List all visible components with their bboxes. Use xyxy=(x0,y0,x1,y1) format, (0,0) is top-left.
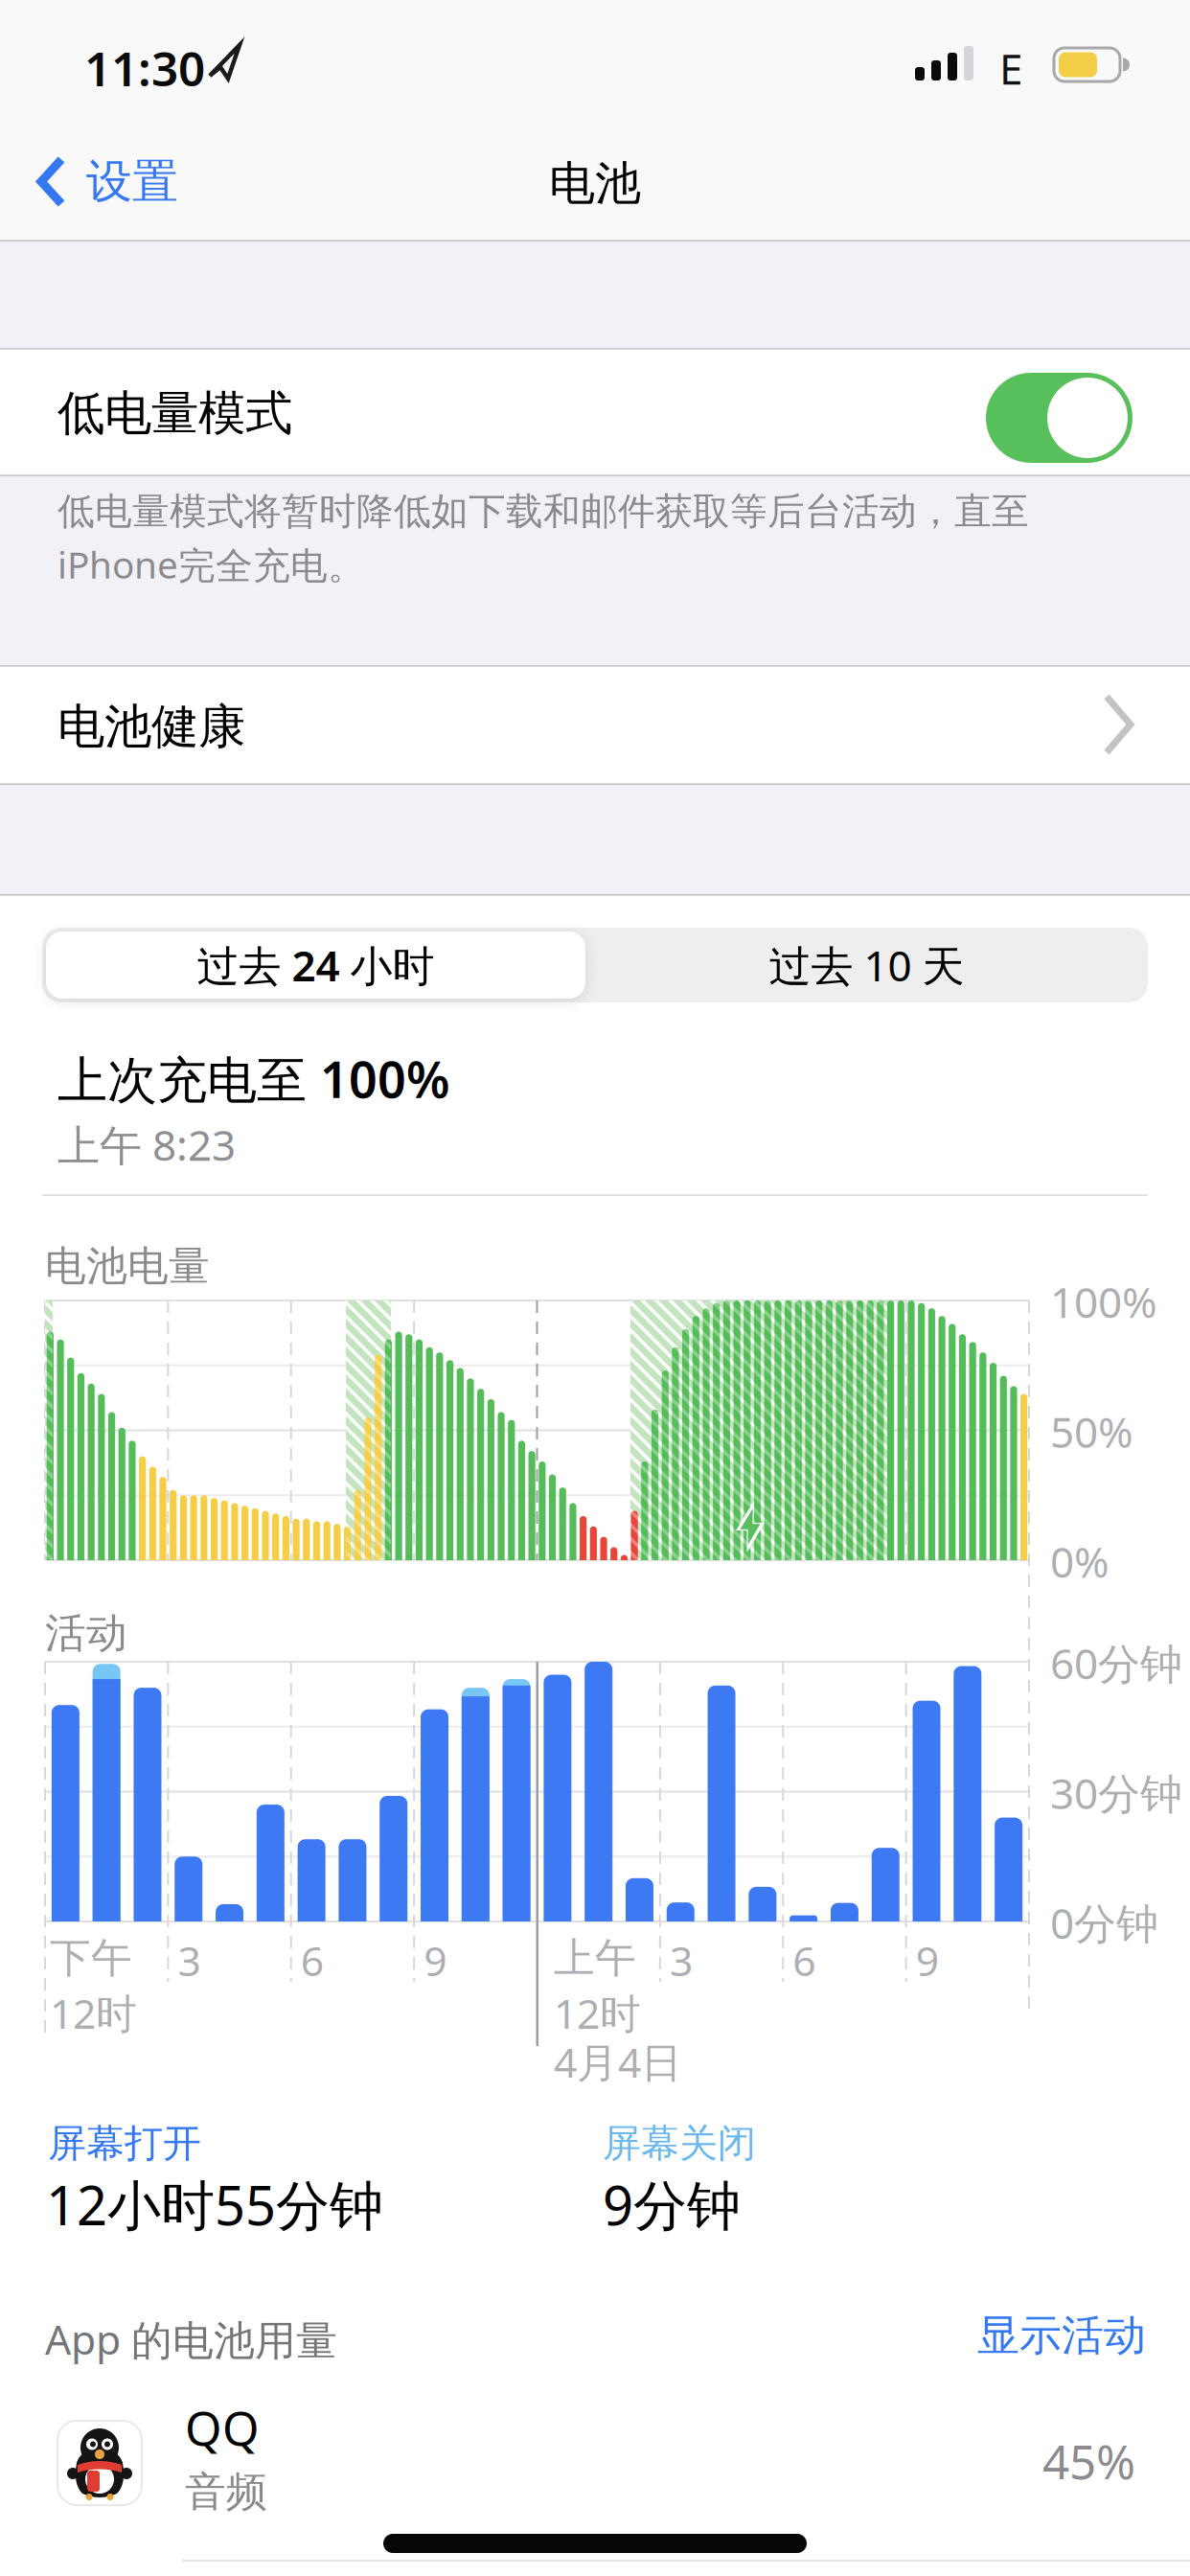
staticText: 6 xyxy=(301,1933,324,1987)
staticText: 上午 xyxy=(554,1933,636,1983)
staticText: 低电量模式 xyxy=(57,384,292,442)
staticText: 9 xyxy=(916,1933,939,1987)
staticText: 12时 xyxy=(554,1986,641,2040)
staticText: 过去 10 天 xyxy=(769,937,964,993)
staticText: QQ xyxy=(185,2396,260,2459)
staticText: 屏幕关闭 xyxy=(603,2120,756,2167)
staticText: 12时 xyxy=(50,1986,137,2040)
button[interactable]: 过去 10 天 xyxy=(585,928,1148,1002)
staticText: 45% xyxy=(1042,2429,1135,2492)
staticText: 30分钟 xyxy=(1050,1765,1182,1821)
button[interactable]: 过去 24 小时 xyxy=(46,931,585,999)
staticText: App 的电池用量 xyxy=(45,2311,337,2366)
staticText: 11:30 xyxy=(84,36,205,99)
staticText: 电池健康 xyxy=(57,698,245,756)
staticText: 3 xyxy=(178,1933,201,1987)
button[interactable]: 低电量模式开关 xyxy=(986,373,1133,463)
staticText: 0% xyxy=(1050,1533,1110,1589)
staticText: 低电量模式将暂时降低如下载和邮件获取等后台活动，直至 xyxy=(57,489,1029,534)
staticText: 显示活动 xyxy=(977,2310,1146,2361)
button[interactable]: 电池健康 xyxy=(0,665,1190,785)
staticText: 4月4日 xyxy=(554,2035,682,2089)
staticText: 12小时55分钟 xyxy=(46,2169,383,2240)
staticText: 0分钟 xyxy=(1050,1895,1158,1951)
staticText: 9 xyxy=(424,1933,447,1987)
staticText: 设置 xyxy=(86,153,178,210)
staticText: 音频 xyxy=(185,2467,267,2517)
button[interactable]: 显示活动 xyxy=(977,2310,1146,2361)
staticText: 6 xyxy=(793,1933,816,1987)
staticText: 下午 xyxy=(50,1933,132,1983)
staticText: E xyxy=(999,40,1022,96)
staticText: 上午 8:23 xyxy=(57,1116,236,1172)
staticText: 电池电量 xyxy=(45,1241,210,1291)
staticText: 过去 24 小时 xyxy=(197,937,435,993)
button[interactable]: 返回设置 xyxy=(0,153,178,210)
staticText: 60分钟 xyxy=(1050,1635,1182,1691)
staticText: iPhone完全充电。 xyxy=(57,540,365,589)
staticText: 50% xyxy=(1050,1403,1133,1459)
staticText: 上次充电至 100% xyxy=(57,1046,450,1112)
staticText: 100% xyxy=(1050,1274,1157,1330)
staticText: 9分钟 xyxy=(603,2169,741,2240)
staticText: 活动 xyxy=(45,1608,127,1658)
button[interactable]: QQ xyxy=(0,2373,1190,2561)
staticText: 电池 xyxy=(549,155,641,212)
staticText: 屏幕打开 xyxy=(48,2120,201,2167)
staticText: 3 xyxy=(670,1933,693,1987)
